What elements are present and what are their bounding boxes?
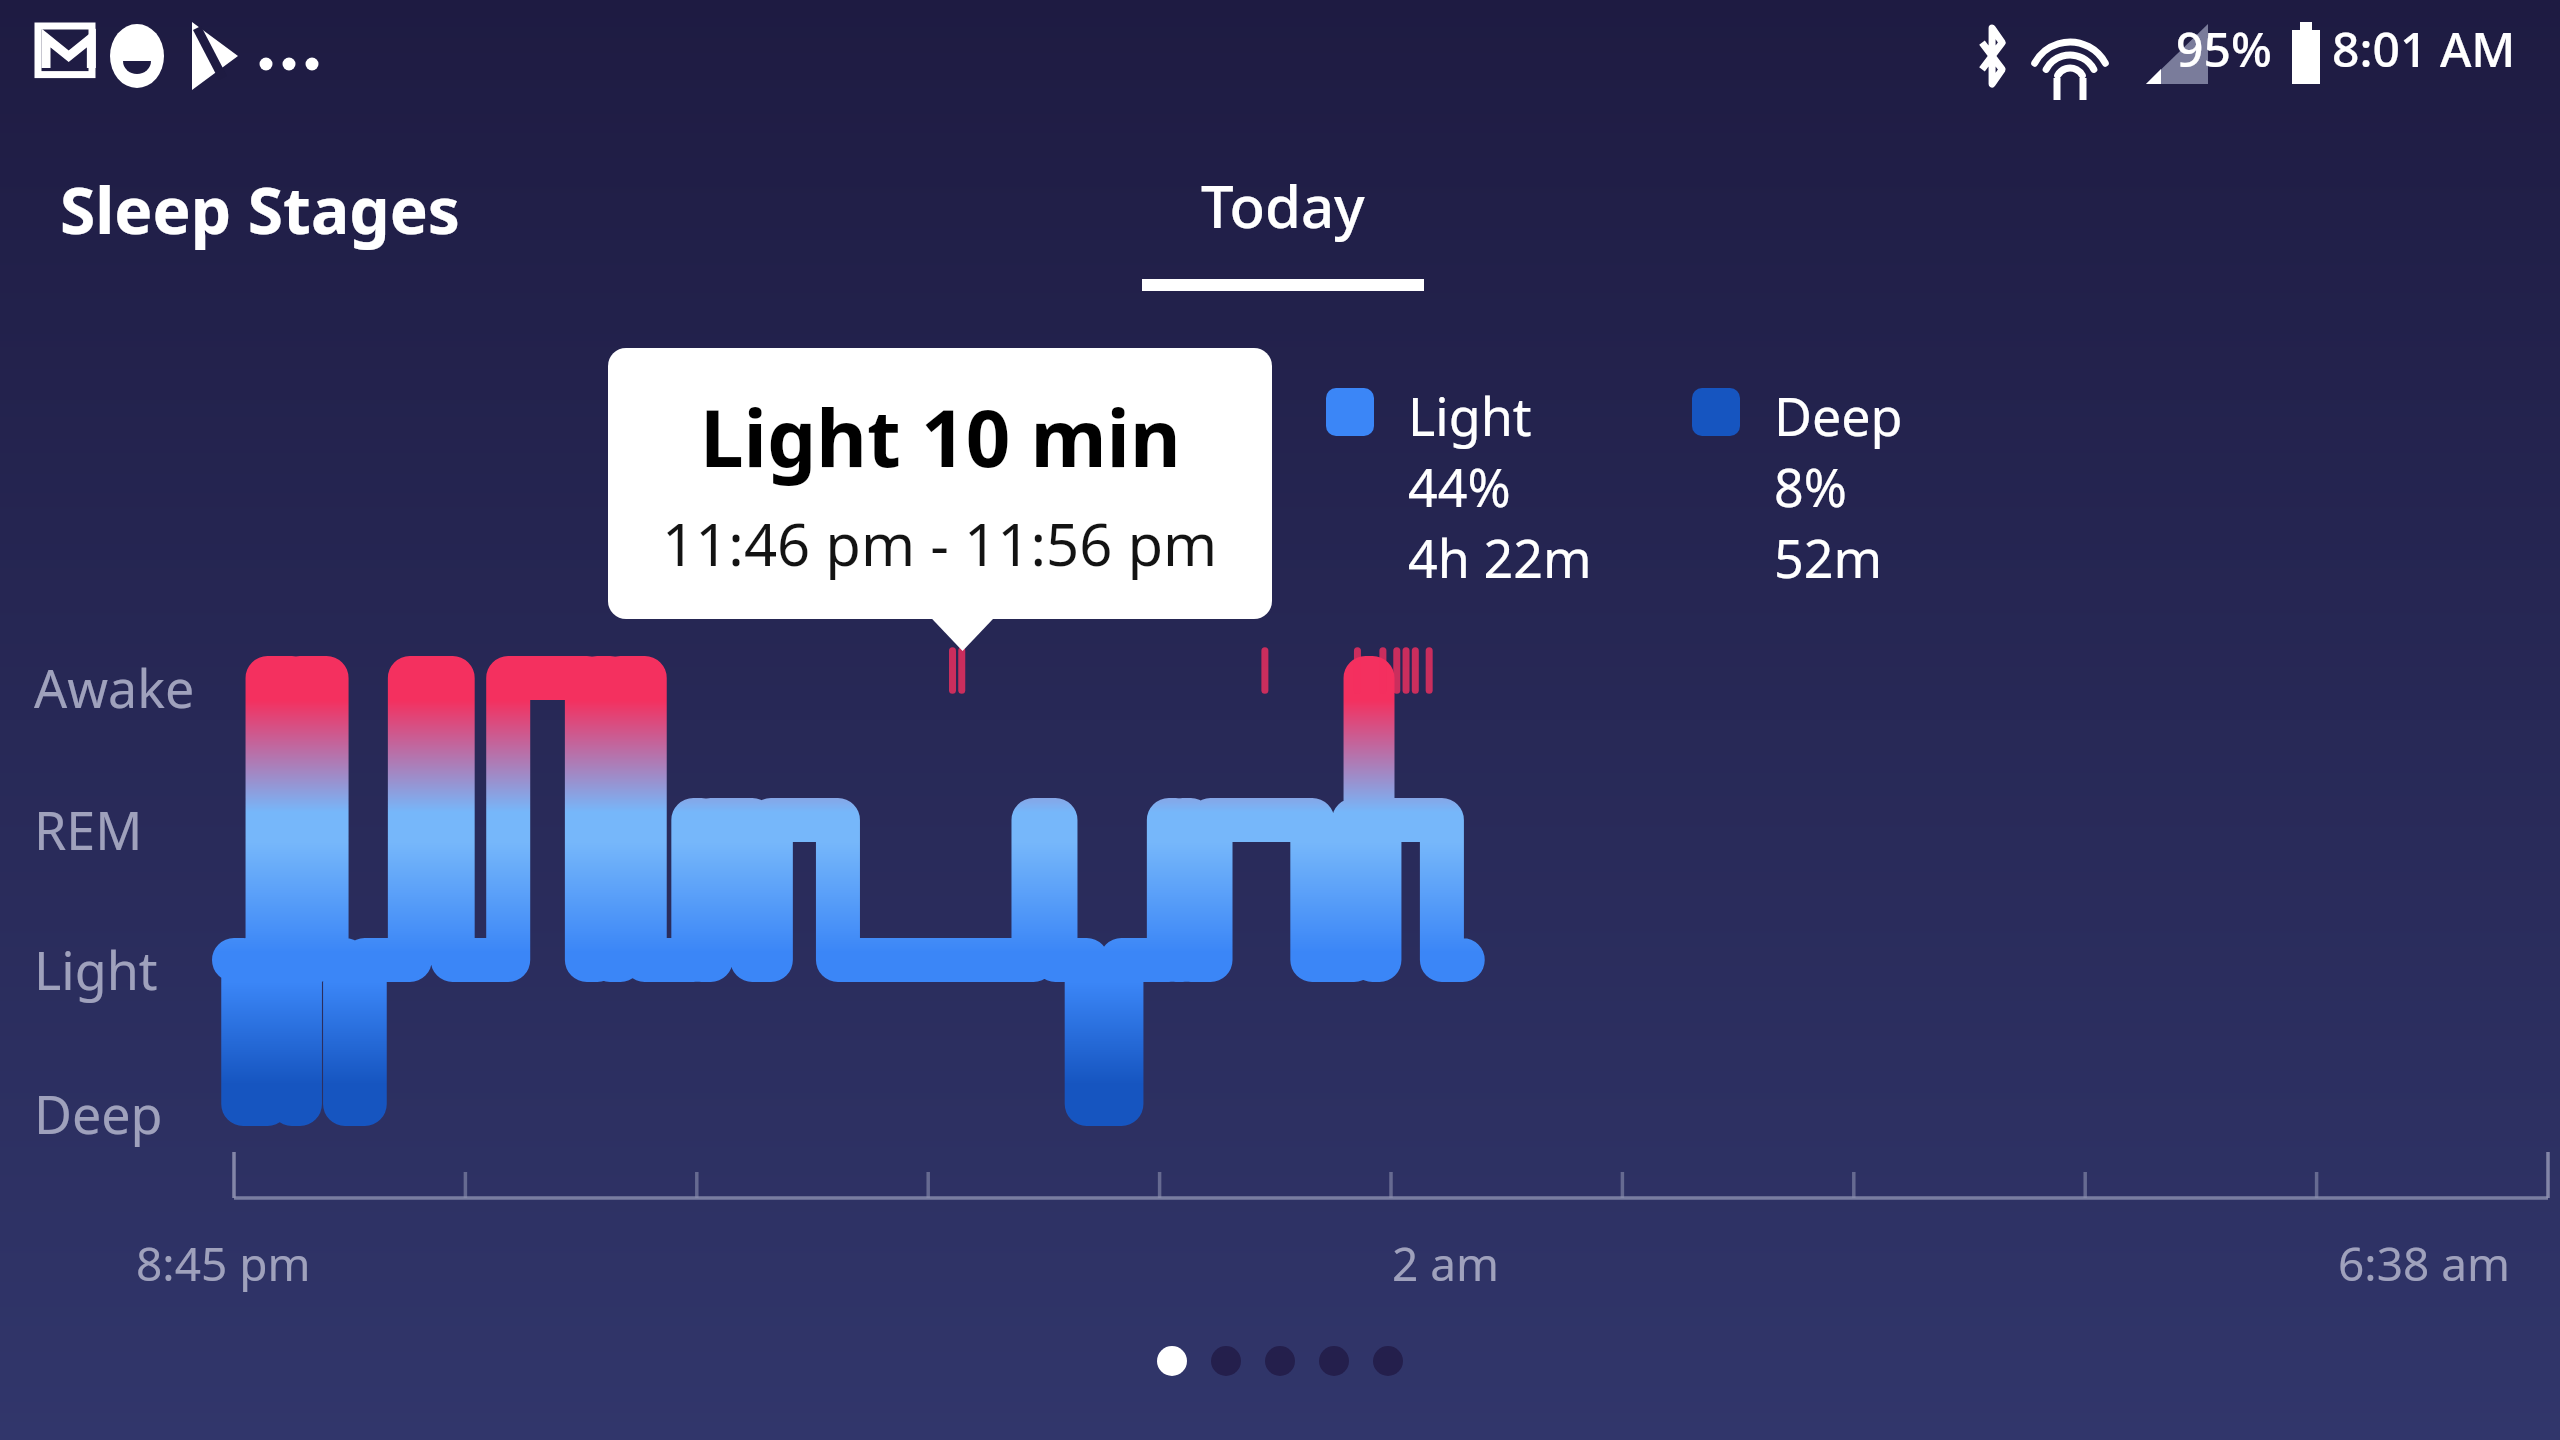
staticText: Light — [1408, 380, 1532, 451]
button[interactable]: Page 3 — [1265, 1346, 1295, 1376]
staticText: 6:38 am — [2338, 1232, 2511, 1295]
button[interactable]: Light 10 min — [608, 348, 1272, 619]
staticText: REM — [34, 794, 143, 865]
button[interactable]: Page 2 — [1211, 1346, 1241, 1376]
staticText: Deep — [34, 1078, 163, 1149]
staticText: 44% — [1408, 451, 1511, 522]
staticText: 11:46 pm - 11:56 pm — [662, 504, 1218, 583]
staticText: 2 am — [1392, 1232, 1500, 1295]
staticText: Light 10 min — [700, 384, 1181, 490]
staticText: Today — [1201, 166, 1365, 245]
button[interactable]: Light — [1326, 380, 1592, 593]
staticText: 8:45 pm — [136, 1232, 311, 1295]
staticText: Awake — [34, 652, 195, 723]
button[interactable]: Page 5 — [1373, 1346, 1403, 1376]
button[interactable]: Today — [1142, 166, 1424, 291]
staticText: Deep — [1774, 380, 1903, 451]
staticText: 8:01 AM — [2332, 16, 2516, 81]
staticText: 52m — [1774, 522, 1883, 593]
staticText: 95% — [2176, 16, 2272, 81]
staticText: 8% — [1774, 451, 1847, 522]
staticText: Light — [34, 934, 158, 1005]
button[interactable]: Page 4 — [1319, 1346, 1349, 1376]
button[interactable]: Deep — [1692, 380, 1903, 593]
button[interactable]: Page 1 — [1157, 1346, 1187, 1376]
staticText: Sleep Stages — [60, 166, 460, 253]
staticText: 4h 22m — [1408, 522, 1592, 593]
